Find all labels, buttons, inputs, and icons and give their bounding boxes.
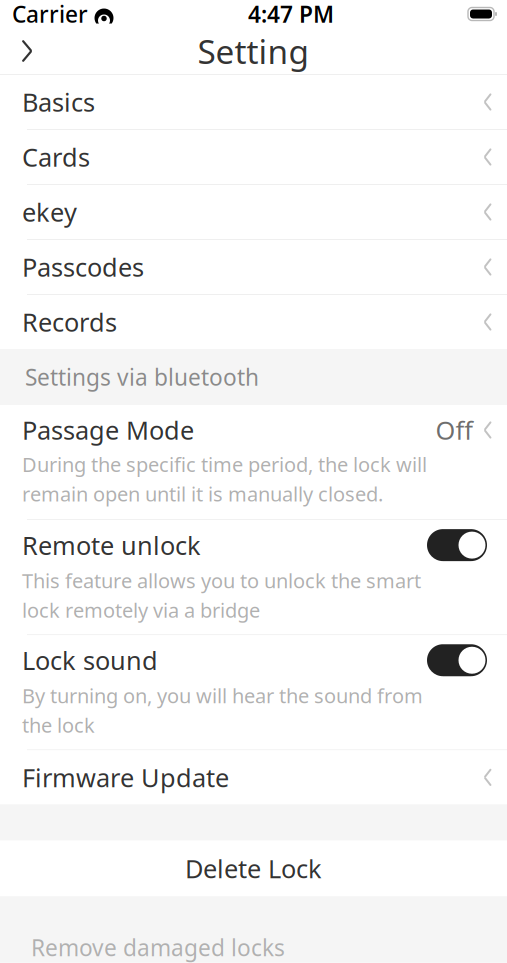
button[interactable]: Remote unlock xyxy=(0,520,507,634)
staticText: Setting xyxy=(197,29,309,73)
staticText: Firmware Update xyxy=(22,760,229,794)
button[interactable]: Passcodes xyxy=(0,240,507,294)
button[interactable]: Cards xyxy=(0,130,507,184)
button[interactable]: Delete Lock xyxy=(0,840,507,896)
staticText: This feature allows you to unlock the sm… xyxy=(22,567,421,623)
button[interactable]: ekey xyxy=(0,185,507,239)
button[interactable]: Firmware Update xyxy=(0,750,507,804)
staticText: Off xyxy=(436,413,473,447)
button[interactable]: Passage Mode xyxy=(0,405,507,519)
staticText: ekey xyxy=(22,195,77,229)
staticText: Passcodes xyxy=(22,250,144,284)
staticText: Basics xyxy=(22,85,95,119)
staticText: Remote unlock xyxy=(22,528,201,562)
staticText: Passage Mode xyxy=(22,413,194,447)
staticText: Records xyxy=(22,305,117,339)
staticText: Remove damaged locks xyxy=(31,932,285,962)
button[interactable]: Records xyxy=(0,295,507,349)
staticText: By turning on, you will hear the sound f… xyxy=(22,682,423,738)
staticText: 4:47 PM xyxy=(248,0,334,29)
button[interactable]: Back xyxy=(0,28,54,74)
staticText: Delete Lock xyxy=(185,851,322,885)
button[interactable]: Lock sound xyxy=(0,635,507,749)
staticText: During the specific time period, the loc… xyxy=(22,451,427,507)
staticText: Lock sound xyxy=(22,643,158,677)
button[interactable]: Basics xyxy=(0,75,507,129)
staticText: Cards xyxy=(22,140,90,174)
staticText: Settings via bluetooth xyxy=(25,362,259,392)
staticText: Carrier xyxy=(12,0,88,29)
